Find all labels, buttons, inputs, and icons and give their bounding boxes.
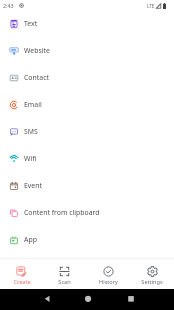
staticText: Email xyxy=(24,100,42,109)
button[interactable]: Email xyxy=(0,92,174,119)
staticText: Scan xyxy=(58,278,71,286)
staticText: Website xyxy=(24,46,50,55)
staticText: Create xyxy=(13,278,31,286)
staticText: LTE xyxy=(147,3,155,9)
button[interactable]: App xyxy=(0,227,174,254)
staticText: 2:43 xyxy=(3,2,14,9)
button[interactable]: Contact xyxy=(0,65,174,92)
staticText: Content from clipboard xyxy=(24,208,100,217)
staticText: Text xyxy=(24,19,38,28)
staticText: SMS xyxy=(24,127,38,136)
button[interactable]: Create xyxy=(0,259,43,289)
staticText: Wifi xyxy=(24,154,37,163)
staticText: App xyxy=(24,235,37,244)
button[interactable]: Website xyxy=(0,38,174,65)
button[interactable]: Event xyxy=(0,173,174,200)
button[interactable]: Wifi xyxy=(0,146,174,173)
button[interactable]: Scan xyxy=(43,259,86,289)
staticText: Event xyxy=(24,181,42,190)
button[interactable]: Settings xyxy=(130,259,174,289)
staticText: Settings xyxy=(141,278,163,286)
staticText: History xyxy=(99,278,118,286)
button[interactable]: Text xyxy=(0,11,174,38)
button[interactable]: SMS xyxy=(0,119,174,146)
button[interactable]: Content from clipboard xyxy=(0,200,174,227)
staticText: Contact xyxy=(24,73,49,82)
button[interactable]: History xyxy=(86,259,130,289)
